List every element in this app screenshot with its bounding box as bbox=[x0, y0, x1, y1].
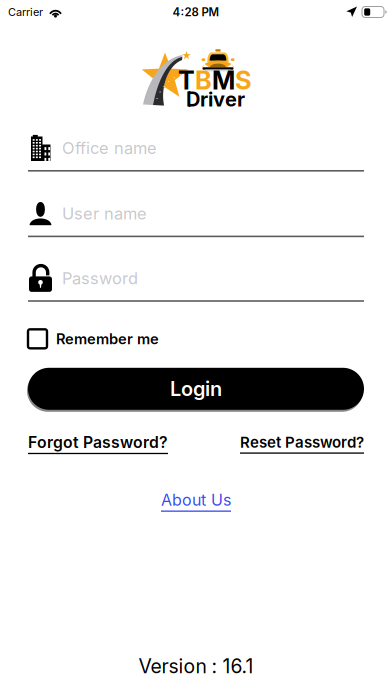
button[interactable]: About Us bbox=[161, 490, 231, 512]
button[interactable]: Login bbox=[28, 367, 364, 411]
staticText: Forgot Password? bbox=[28, 433, 168, 452]
staticText: Driver bbox=[186, 87, 245, 111]
staticText: Login bbox=[170, 377, 222, 401]
staticText: Password bbox=[62, 268, 138, 288]
staticText: Office name bbox=[62, 138, 157, 158]
staticText: Reset Password? bbox=[240, 433, 364, 451]
staticText: Carrier bbox=[8, 5, 43, 19]
button[interactable]: Reset Password? bbox=[240, 433, 364, 454]
staticText: S bbox=[235, 65, 252, 96]
staticText: 4:28 PM bbox=[172, 5, 219, 19]
staticText: T bbox=[178, 65, 195, 96]
staticText: About Us bbox=[161, 490, 231, 509]
button[interactable]: Remember me bbox=[28, 324, 364, 354]
staticText: M bbox=[212, 65, 235, 96]
staticText: User name bbox=[62, 204, 147, 223]
staticText: B bbox=[195, 65, 212, 96]
staticText: Remember me bbox=[56, 330, 159, 348]
button[interactable]: Forgot Password? bbox=[28, 433, 168, 454]
staticText: Version : 16.1 bbox=[138, 655, 253, 678]
